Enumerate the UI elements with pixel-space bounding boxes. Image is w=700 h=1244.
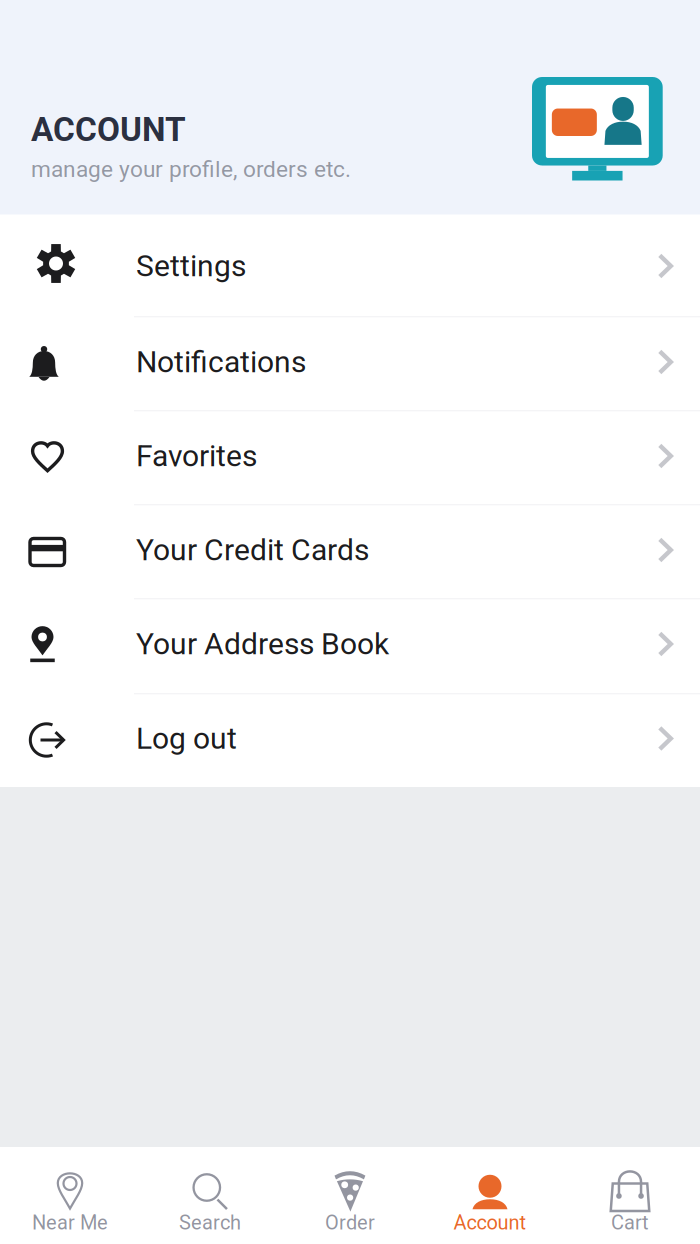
button[interactable]: Settings [0,214,700,317]
button[interactable]: Log out [0,694,700,787]
button[interactable]: Your Credit Cards [0,505,700,599]
staticText: Settings [136,248,246,284]
staticText: ACCOUNT [31,110,186,149]
staticText: Favorites [136,438,257,474]
button[interactable]: Account [420,1147,560,1244]
staticText: Your Credit Cards [136,532,369,568]
button[interactable]: Notifications [0,317,700,411]
button[interactable]: Your Address Book [0,599,700,694]
button[interactable]: Search [140,1147,280,1244]
staticText: Log out [136,721,237,756]
staticText: Notifications [136,344,306,380]
staticText: Account [453,1211,526,1234]
staticText: Search [179,1211,241,1234]
staticText: Your Address Book [136,626,389,662]
button[interactable]: Order [280,1147,420,1244]
staticText: Order [325,1211,375,1234]
staticText: manage your profile, orders etc. [31,156,351,183]
button[interactable]: Favorites [0,411,700,505]
button[interactable]: Near Me [0,1147,140,1244]
staticText: Cart [611,1211,649,1234]
staticText: Near Me [32,1211,108,1234]
button[interactable]: Cart [560,1147,700,1244]
